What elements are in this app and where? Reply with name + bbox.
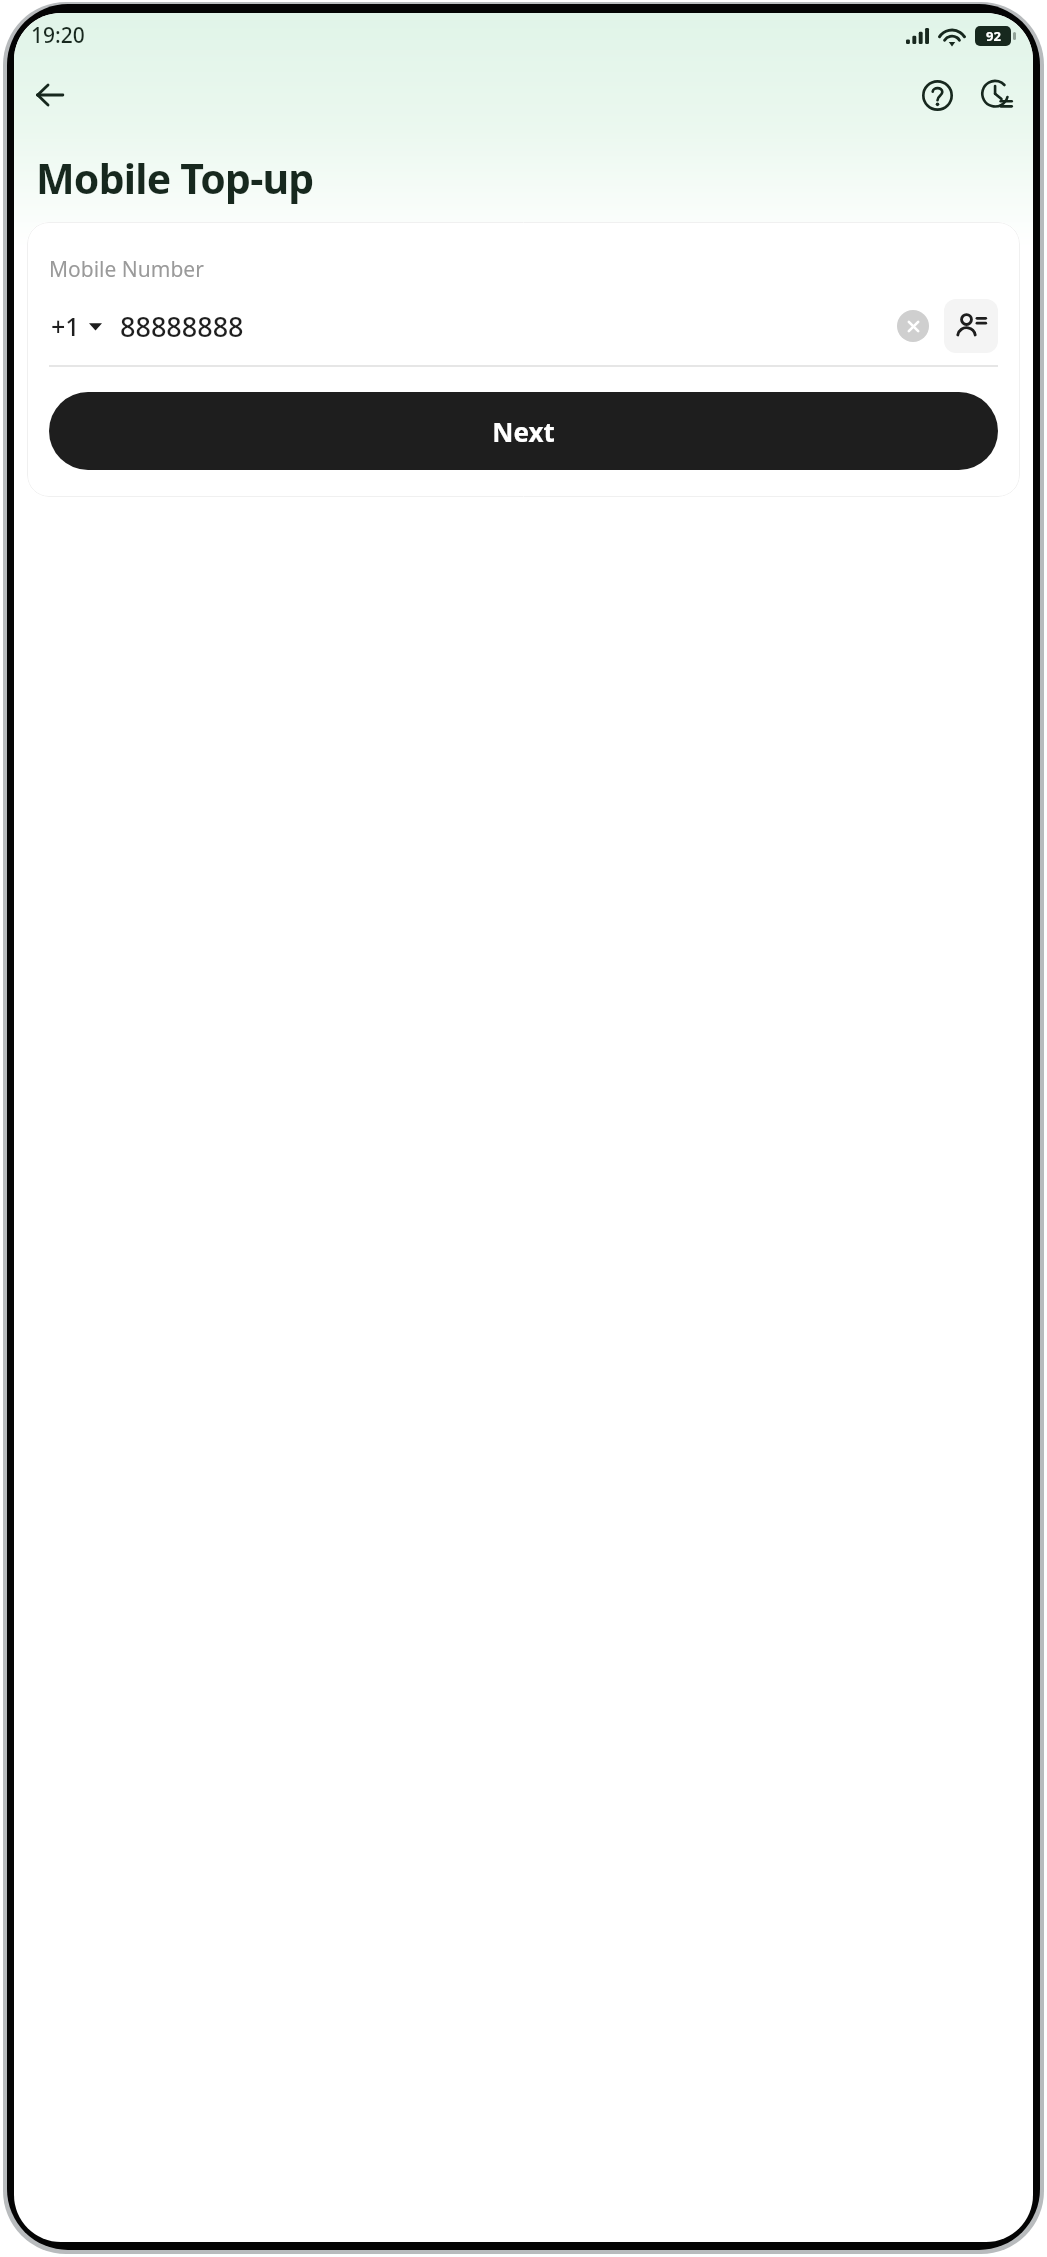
staticText: 92 <box>986 27 1001 45</box>
button[interactable]: Back <box>21 66 79 124</box>
button[interactable]: Choose contact <box>944 299 998 353</box>
button[interactable]: Clear <box>897 310 929 342</box>
button[interactable]: Help <box>908 66 966 124</box>
staticText: Next <box>492 414 555 449</box>
button[interactable]: History <box>968 66 1026 124</box>
button[interactable]: Next <box>49 392 998 470</box>
staticText: +1 <box>51 309 80 343</box>
staticText: Mobile Top-up <box>36 150 314 206</box>
staticText: 88888888 <box>120 308 244 345</box>
staticText: 19:20 <box>31 21 85 50</box>
staticText: Mobile Number <box>49 255 204 284</box>
button[interactable]: +1 <box>49 305 104 347</box>
